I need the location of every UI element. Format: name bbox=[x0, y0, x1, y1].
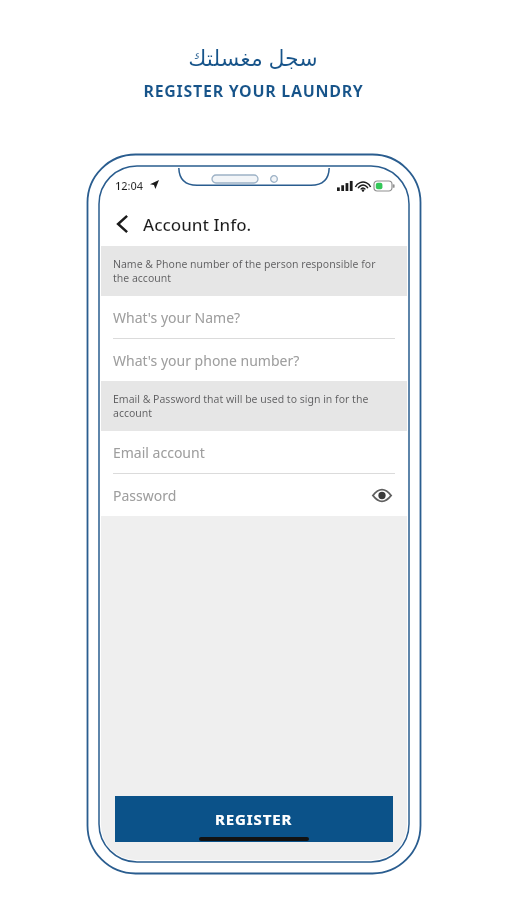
staticText: Name & Phone number of the person respon… bbox=[113, 257, 389, 285]
button[interactable]: Back bbox=[101, 202, 143, 246]
button[interactable]: What's your phone number? bbox=[101, 339, 407, 381]
button[interactable]: Password bbox=[101, 474, 407, 516]
button[interactable]: What's your Name? bbox=[101, 296, 407, 338]
button[interactable]: REGISTER bbox=[115, 796, 393, 842]
staticText: Account Info. bbox=[143, 213, 252, 236]
staticText: Password bbox=[113, 486, 177, 505]
staticText: سجل مغسلتك bbox=[188, 42, 318, 72]
staticText: Email account bbox=[113, 443, 205, 462]
staticText: What's your Name? bbox=[113, 308, 241, 327]
staticText: REGISTER YOUR LAUNDRY bbox=[143, 80, 364, 102]
staticText: What's your phone number? bbox=[113, 351, 300, 370]
staticText: REGISTER bbox=[215, 809, 293, 829]
staticText: Email & Password that will be used to si… bbox=[113, 392, 389, 420]
button[interactable]: Show password bbox=[369, 482, 395, 508]
button[interactable]: Email account bbox=[101, 431, 407, 473]
staticText: 12:04 bbox=[115, 178, 144, 193]
